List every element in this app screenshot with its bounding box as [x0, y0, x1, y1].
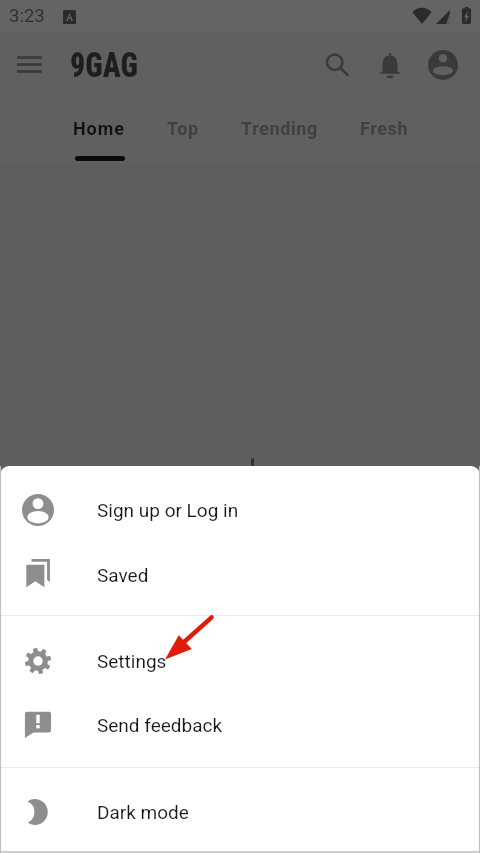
staticText: Home [73, 118, 125, 139]
button[interactable]: Send feedback [0, 693, 480, 757]
button[interactable]: Sign up or Log in [0, 478, 480, 542]
button[interactable]: Notifications [368, 43, 412, 87]
button[interactable]: Home [58, 104, 140, 162]
staticText: Dark mode [97, 801, 189, 823]
button[interactable]: Menu [7, 42, 52, 87]
staticText: 9GAG [70, 45, 138, 86]
staticText: Sign up or Log in [97, 499, 239, 521]
staticText: Trending [241, 118, 318, 139]
button[interactable]: Saved [0, 543, 480, 607]
staticText: Saved [97, 564, 149, 586]
button[interactable]: Fresh [345, 104, 423, 162]
button[interactable]: Settings [0, 629, 480, 693]
staticText: Send feedback [97, 714, 223, 736]
staticText: Settings [97, 650, 167, 672]
button[interactable]: Search [315, 43, 359, 87]
staticText: Top [167, 118, 199, 139]
button[interactable]: Dark mode [0, 780, 480, 844]
staticText: 3:23 [9, 5, 45, 27]
button[interactable]: Trending [225, 104, 333, 162]
button[interactable]: Profile [421, 43, 465, 87]
button[interactable]: Top [151, 104, 214, 162]
staticText: Fresh [360, 118, 409, 139]
